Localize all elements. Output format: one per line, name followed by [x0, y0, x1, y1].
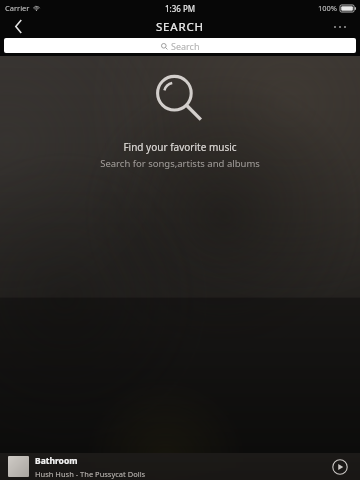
staticText: Carrier — [5, 3, 30, 13]
button[interactable]: Back — [0, 15, 38, 38]
staticText: 100% — [318, 3, 338, 13]
staticText: Find your favorite music — [123, 140, 237, 154]
button[interactable]: Play — [328, 455, 352, 479]
staticText: Hush Hush - The Pussycat Dolls — [35, 469, 146, 479]
button[interactable]: Search — [4, 38, 356, 53]
staticText: SEARCH — [156, 19, 204, 35]
staticText: Bathroom — [35, 455, 78, 467]
button[interactable]: More options — [320, 15, 360, 38]
staticText: Search for songs,artists and albums — [100, 157, 260, 170]
button[interactable]: Bathroom — [0, 453, 360, 480]
staticText: 1:36 PM — [165, 3, 196, 14]
staticText: Search — [171, 40, 200, 52]
